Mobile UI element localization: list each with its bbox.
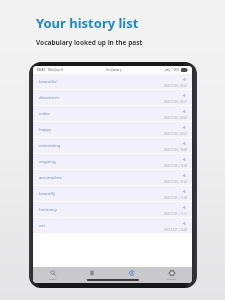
staticText: happy bbox=[39, 127, 164, 133]
staticText: index bbox=[39, 111, 164, 117]
staticText: Vocabulary looked up in the past bbox=[36, 38, 143, 47]
staticText: 2020-01-01 | 11:30 bbox=[164, 196, 187, 200]
button[interactable]: Play pronunciation bbox=[182, 141, 187, 146]
button[interactable]: index bbox=[33, 106, 192, 122]
staticText: 100% bbox=[172, 68, 180, 72]
staticText: Search bbox=[49, 277, 57, 280]
button[interactable]: Play pronunciation bbox=[182, 109, 187, 114]
button[interactable]: interesting bbox=[33, 138, 192, 154]
button[interactable]: Play pronunciation bbox=[182, 157, 187, 162]
staticText: 2020-01-04 | 09:21 bbox=[164, 100, 187, 104]
staticText: Dictionary bbox=[86, 277, 98, 280]
button[interactable]: beautify bbox=[33, 186, 192, 202]
staticText: 2020-01-01 | 11:12 bbox=[164, 212, 187, 216]
staticText: Your history list bbox=[36, 14, 139, 32]
button[interactable]: Play pronunciation bbox=[182, 221, 187, 226]
staticText: vet bbox=[39, 223, 164, 229]
button[interactable]: Play pronunciation bbox=[182, 189, 187, 194]
staticText: 2020-01-03 | 20:41 bbox=[164, 132, 187, 136]
staticText: beautify bbox=[39, 191, 164, 197]
button[interactable]: Play pronunciation bbox=[182, 173, 187, 178]
button[interactable]: Dictionary bbox=[72, 267, 112, 283]
button[interactable]: Play pronunciation bbox=[182, 205, 187, 210]
staticText: Dictionary bbox=[106, 68, 122, 72]
staticText: 2020-01-03 | 19:58 bbox=[164, 148, 187, 152]
button[interactable]: Search bbox=[33, 267, 72, 283]
staticText: interesting bbox=[39, 143, 164, 149]
staticText: Wed Jan 8 bbox=[48, 68, 63, 72]
button[interactable]: Play pronunciation bbox=[182, 77, 187, 82]
staticText: beautiful bbox=[39, 79, 164, 85]
staticText: document bbox=[39, 95, 164, 101]
button[interactable]: beautiful bbox=[33, 74, 192, 90]
button[interactable]: document bbox=[33, 90, 192, 106]
button[interactable]: harmony bbox=[33, 202, 192, 218]
button[interactable]: Settings bbox=[152, 267, 192, 283]
staticText: History bbox=[128, 277, 137, 280]
button[interactable]: vet bbox=[33, 218, 192, 234]
staticText: 2020-01-02 | 17:54 bbox=[164, 180, 187, 184]
button[interactable]: happy bbox=[33, 122, 192, 138]
staticText: harmony bbox=[39, 207, 164, 213]
staticText: ongoing bbox=[39, 159, 164, 165]
staticText: Settings bbox=[167, 277, 177, 280]
staticText: accumulate bbox=[39, 175, 164, 181]
button[interactable]: Play pronunciation bbox=[182, 125, 187, 130]
button[interactable]: History bbox=[112, 267, 152, 283]
button[interactable]: accumulate bbox=[33, 170, 192, 186]
button[interactable]: ongoing bbox=[33, 154, 192, 170]
staticText: 2020-01-04 | 09:22 bbox=[164, 84, 187, 88]
button[interactable]: Play pronunciation bbox=[182, 93, 187, 98]
staticText: 2020-01-02 | 18:03 bbox=[164, 164, 187, 168]
staticText: 2019-12-31 | 22:40 bbox=[164, 228, 187, 232]
staticText: 2020-01-03 | 20:45 bbox=[164, 116, 187, 120]
staticText: 09:41 bbox=[37, 68, 46, 72]
